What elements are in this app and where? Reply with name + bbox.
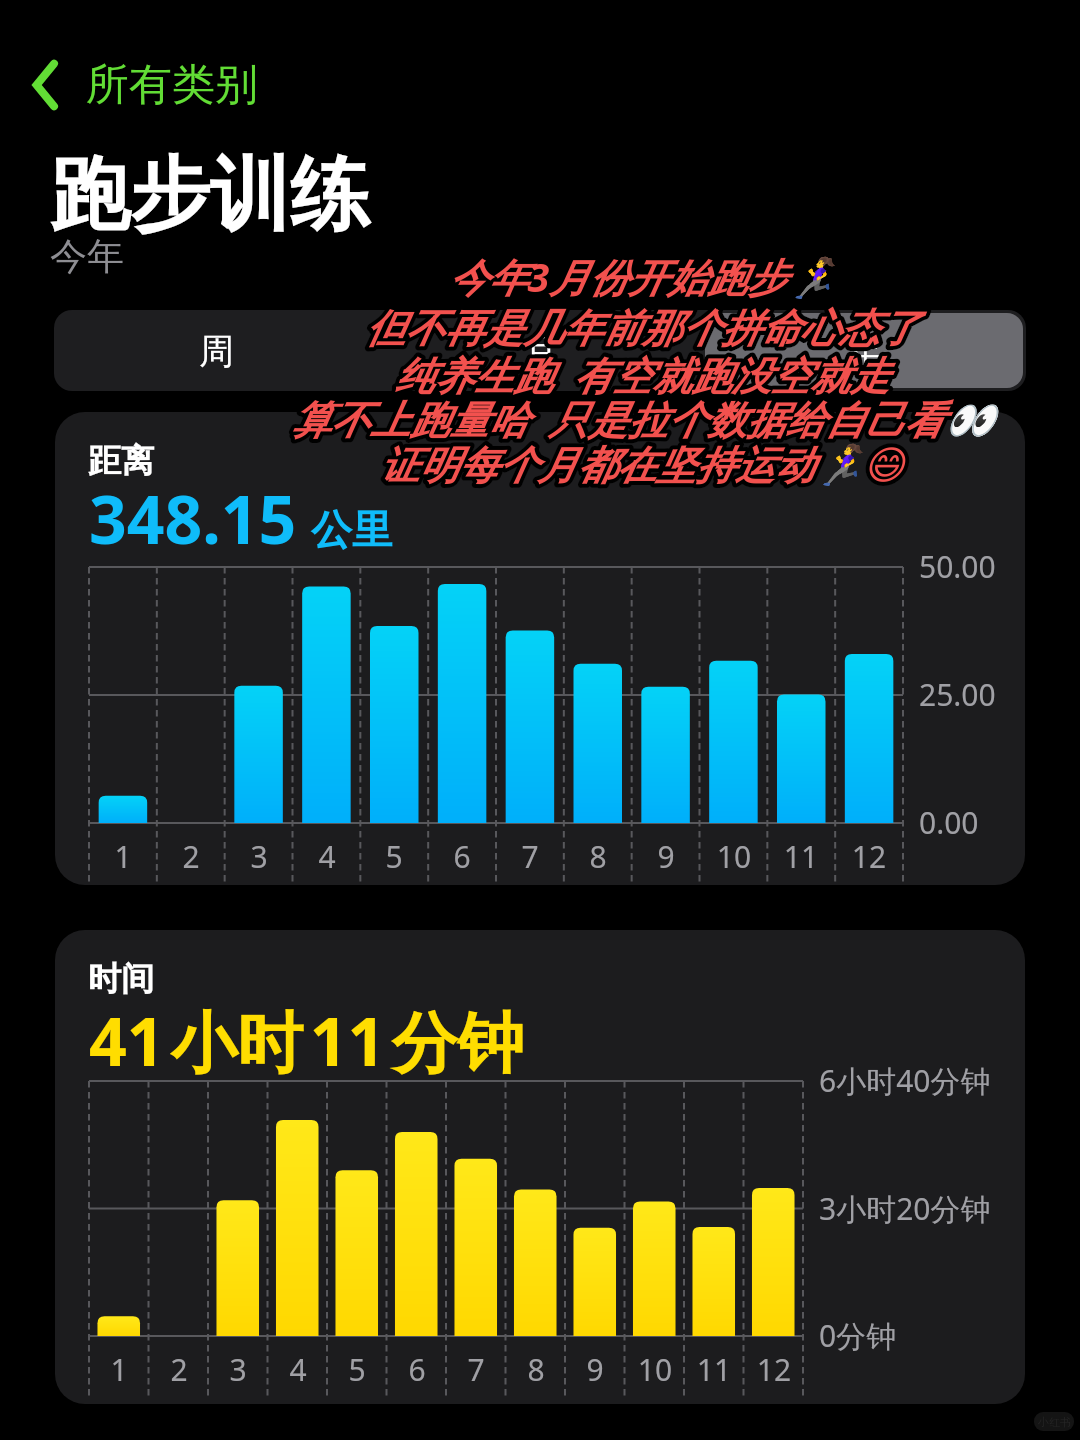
button[interactable]: 距离 — [55, 412, 1025, 885]
staticText: 距离 — [88, 440, 154, 482]
staticText: 纯养生跑 有空就跑没空就走 — [187, 348, 1080, 396]
button[interactable]: 时间 — [55, 930, 1025, 1404]
staticText: 今年3月份开始跑步🏃‍♀️ — [187, 250, 1080, 298]
staticText: 纯养生跑 有空就跑没空就走 — [187, 348, 1080, 396]
staticText: 跑步训练 — [50, 145, 370, 246]
staticText: 6 — [428, 836, 496, 877]
button[interactable]: 年 — [705, 313, 1023, 388]
staticText: 12 — [744, 1349, 804, 1390]
staticText: 周 — [199, 329, 234, 373]
staticText: 25.00 — [919, 674, 996, 715]
staticText: 8 — [564, 836, 632, 877]
staticText: 11 — [767, 836, 835, 877]
staticText: 41 小时 11 分钟 — [89, 995, 524, 1085]
staticText: 3 — [208, 1349, 268, 1390]
staticText: 4 — [293, 836, 361, 877]
staticText: 348.15 — [89, 473, 297, 563]
button[interactable]: 月 — [381, 313, 699, 388]
staticText: 5 — [327, 1349, 387, 1390]
staticText: 公里 — [311, 505, 393, 557]
staticText: 所有类别 — [86, 58, 258, 112]
staticText: 3 — [225, 836, 293, 877]
staticText: 但不再是几年前那个拼命心态了 — [187, 304, 1080, 352]
staticText: 今年 — [50, 233, 124, 280]
staticText: 2 — [149, 1349, 209, 1390]
staticText: 6 — [387, 1349, 447, 1390]
staticText: 6小时40分钟 — [819, 1060, 991, 1101]
staticText: 1 — [89, 836, 157, 877]
staticText: 10 — [625, 1349, 685, 1390]
staticText: 7 — [496, 836, 564, 877]
staticText: 1 — [89, 1349, 149, 1390]
staticText: 算不上跑量哈 只是拉个数据给自己看👀 — [187, 392, 1080, 440]
staticText: 8 — [506, 1349, 566, 1390]
staticText: 证明每个月都在坚持运动🏃‍♀️😄 — [187, 441, 1080, 489]
staticText: 12 — [835, 836, 903, 877]
staticText: 3小时20分钟 — [819, 1188, 991, 1229]
staticText: 但不再是几年前那个拼命心态了 — [187, 304, 1080, 352]
staticText: 5 — [360, 836, 428, 877]
staticText: 2 — [157, 836, 225, 877]
staticText: 月 — [523, 329, 558, 373]
button[interactable]: 周 — [57, 313, 375, 388]
staticText: 11 — [684, 1349, 744, 1390]
staticText: 算不上跑量哈 只是拉个数据给自己看👀 — [187, 392, 1080, 440]
staticText: 0分钟 — [819, 1315, 897, 1356]
staticText: 0.00 — [919, 802, 979, 843]
staticText: 50.00 — [919, 546, 996, 587]
staticText: 年 — [847, 329, 882, 373]
staticText: 时间 — [88, 958, 154, 1000]
staticText: 9 — [565, 1349, 625, 1390]
staticText: 今年3月份开始跑步🏃‍♀️ — [187, 250, 1080, 298]
staticText: 小红书 — [1038, 1415, 1071, 1429]
staticText: 10 — [700, 836, 768, 877]
staticText: 9 — [632, 836, 700, 877]
staticText: 7 — [446, 1349, 506, 1390]
staticText: 证明每个月都在坚持运动🏃‍♀️😄 — [187, 441, 1080, 489]
button[interactable]: 返回 所有类别 — [24, 52, 264, 118]
staticText: 4 — [268, 1349, 328, 1390]
